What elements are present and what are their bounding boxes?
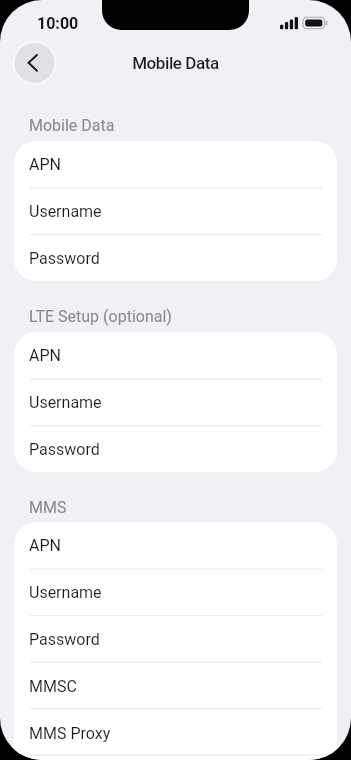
staticText: LTE Setup (optional) bbox=[29, 307, 172, 326]
staticText: APN bbox=[29, 536, 61, 555]
staticText: APN bbox=[29, 155, 61, 174]
staticText: 10:00 bbox=[37, 14, 79, 33]
button[interactable]: Username bbox=[14, 379, 337, 426]
button[interactable]: MMS Proxy bbox=[14, 710, 337, 757]
button[interactable]: MMSC bbox=[14, 663, 337, 710]
staticText: Mobile Data bbox=[0, 53, 351, 73]
staticText: Password bbox=[29, 630, 100, 649]
button[interactable]: Password bbox=[14, 426, 337, 472]
button[interactable]: MMS Port bbox=[14, 757, 337, 760]
button[interactable]: Username bbox=[14, 188, 337, 235]
staticText: MMSC bbox=[29, 677, 77, 696]
staticText: MMS Proxy bbox=[29, 724, 111, 743]
button[interactable]: Password bbox=[14, 616, 337, 663]
button[interactable]: Username bbox=[14, 569, 337, 616]
staticText: Username bbox=[29, 583, 102, 602]
staticText: Username bbox=[29, 393, 102, 412]
staticText: Password bbox=[29, 440, 100, 459]
button[interactable]: Back bbox=[13, 42, 56, 85]
button[interactable]: APN bbox=[14, 141, 337, 188]
staticText: MMS bbox=[29, 498, 67, 517]
staticText: APN bbox=[29, 346, 61, 365]
staticText: Mobile Data bbox=[29, 116, 115, 135]
staticText: Password bbox=[29, 249, 100, 268]
button[interactable]: Password bbox=[14, 235, 337, 281]
button[interactable]: APN bbox=[14, 522, 337, 569]
staticText: Username bbox=[29, 202, 102, 221]
button[interactable]: APN bbox=[14, 332, 337, 379]
